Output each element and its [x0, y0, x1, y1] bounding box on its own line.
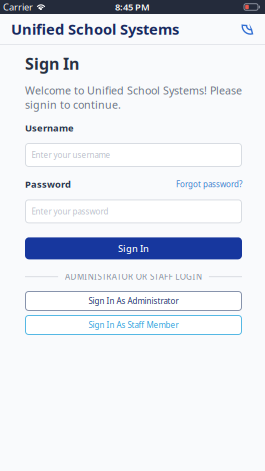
button[interactable]: Enter your password: [25, 199, 242, 223]
button[interactable]: Enter your username: [25, 143, 242, 167]
button[interactable]: Sign In As Administrator: [25, 291, 242, 311]
staticText: Carrier: [3, 1, 33, 13]
staticText: Unified School Systems: [11, 19, 179, 39]
button[interactable]: Forgot password?: [176, 179, 242, 189]
staticText: Enter your password: [31, 206, 108, 217]
staticText: Sign In As Administrator: [88, 296, 178, 306]
staticText: 8:45 PM: [115, 1, 150, 13]
staticText: Sign In As Staff Member: [88, 320, 178, 330]
staticText: Enter your username: [31, 150, 110, 160]
staticText: Forgot password?: [176, 179, 242, 189]
button[interactable]: [241, 22, 254, 35]
button[interactable]: Sign In: [25, 237, 242, 259]
staticText: ADMINISTRATOR OR STAFF LOGIN: [65, 271, 202, 282]
staticText: Username: [25, 122, 74, 134]
staticText: Sign In: [118, 242, 149, 255]
staticText: Password: [25, 178, 71, 190]
staticText: Sign In: [25, 53, 79, 74]
staticText: Welcome to Unified School Systems! Pleas…: [25, 83, 242, 111]
button[interactable]: Sign In As Staff Member: [25, 315, 242, 335]
